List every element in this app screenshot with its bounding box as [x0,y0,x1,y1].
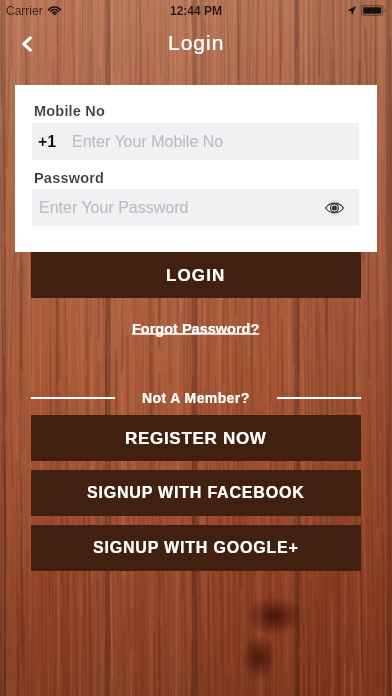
staticText: Password [34,170,105,186]
staticText: Login [168,31,225,54]
staticText: +1 [38,133,57,151]
staticText: LOGIN [166,266,226,285]
button[interactable]: REGISTER NOW [31,415,361,461]
staticText: SIGNUP WITH GOOGLE+ [93,539,299,557]
staticText: Carrier [6,4,43,17]
button[interactable]: LOGIN [31,252,361,298]
button[interactable]: Forgot Password? [126,318,266,340]
staticText: Enter Your Mobile No [72,133,224,151]
button[interactable]: Show password [319,193,349,223]
button[interactable]: Back [12,22,42,66]
button[interactable]: Enter Your Password [32,189,359,226]
staticText: Forgot Password? [132,321,260,337]
staticText: Not A Member? [142,390,250,406]
staticText: SIGNUP WITH FACEBOOK [87,484,305,502]
button[interactable]: SIGNUP WITH FACEBOOK [31,470,361,516]
staticText: 12:44 PM [170,4,223,17]
staticText: Mobile No [34,103,106,119]
button[interactable]: +1 [32,123,359,160]
staticText: REGISTER NOW [125,429,267,448]
staticText: Enter Your Password [39,199,189,217]
button[interactable]: SIGNUP WITH GOOGLE+ [31,525,361,571]
